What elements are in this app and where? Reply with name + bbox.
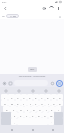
button[interactable]: More options (55, 5, 62, 12)
staticText: t (30, 102, 31, 105)
staticText: . (51, 120, 52, 123)
staticText: u (41, 102, 43, 105)
staticText: 0 (59, 96, 61, 99)
button[interactable]: 6 (33, 94, 39, 100)
button[interactable]: n (42, 112, 48, 118)
staticText: b (38, 114, 40, 117)
staticText: c (26, 114, 28, 117)
button[interactable]: Emoji (49, 80, 55, 86)
staticText: s (13, 108, 15, 111)
staticText: j (46, 108, 47, 111)
button[interactable]: 9 (51, 94, 57, 100)
button[interactable]: u (39, 100, 45, 106)
button[interactable]: d (17, 106, 24, 112)
staticText: z (14, 114, 16, 117)
button[interactable]: 0 (57, 94, 63, 100)
button[interactable]: z (11, 112, 18, 118)
staticText: +1 555 (10, 15, 16, 18)
button[interactable]: w (8, 100, 15, 106)
button[interactable]: h (37, 106, 43, 112)
button[interactable]: Back (9, 127, 14, 132)
button[interactable]: Back (2, 5, 9, 12)
staticText: p (59, 102, 61, 105)
staticText: v (32, 114, 34, 117)
button[interactable]: +1 555 (6, 14, 19, 18)
staticText: Text message · Unencrypted (0, 75, 64, 78)
button[interactable]: q (1, 100, 8, 106)
button[interactable]: b (36, 112, 42, 118)
staticText: m (50, 114, 53, 117)
button[interactable]: Keyboard tool 1 (3, 88, 8, 93)
button[interactable]: r (21, 100, 27, 106)
button[interactable]: o (51, 100, 57, 106)
staticText: d (20, 108, 22, 111)
button[interactable]: 4 (21, 94, 27, 100)
staticText: 1 (4, 96, 6, 99)
button[interactable]: l (55, 106, 61, 112)
staticText: e (17, 102, 19, 105)
button[interactable]: v (30, 112, 36, 118)
button[interactable]: f (24, 106, 31, 112)
button[interactable]: Photos (7, 80, 13, 86)
button[interactable]: Keyboard tool 4 (43, 88, 48, 93)
button[interactable]: 2 (8, 94, 15, 100)
staticText: i (48, 102, 49, 105)
staticText: Text (30, 68, 35, 71)
button[interactable]: 7 (39, 94, 45, 100)
button[interactable]: Add attachment (1, 80, 7, 86)
button[interactable]: y (33, 100, 39, 106)
staticText: w (11, 102, 13, 105)
button[interactable]: e (15, 100, 21, 106)
button[interactable]: a (3, 106, 10, 112)
staticText: 6 (35, 96, 37, 99)
button[interactable]: m (48, 112, 54, 118)
staticText: h (39, 108, 41, 111)
staticText: 2 (11, 96, 13, 99)
staticText: 9 (53, 96, 55, 99)
staticText: 9:41 (2, 1, 7, 4)
button[interactable]: Show contacts (57, 14, 62, 19)
staticText: q (4, 102, 6, 105)
button[interactable]: Call (48, 5, 55, 12)
button[interactable]: 1 (1, 94, 8, 100)
staticText: l (58, 108, 59, 111)
button[interactable]: 5 (27, 94, 33, 100)
button[interactable]: x (18, 112, 24, 118)
button[interactable]: c (24, 112, 30, 118)
button[interactable]: k (49, 106, 55, 112)
button[interactable]: Keyboard tool 3 (30, 88, 35, 93)
button[interactable]: 8 (45, 94, 51, 100)
button[interactable]: Home (30, 127, 35, 132)
staticText: x (20, 114, 22, 117)
button[interactable]: Send (55, 79, 63, 87)
button[interactable]: t (27, 100, 33, 106)
staticText: To: (2, 15, 5, 18)
button[interactable]: i (45, 100, 51, 106)
button[interactable]: Video call (41, 5, 48, 12)
button[interactable]: p (57, 100, 63, 106)
button[interactable]: j (43, 106, 49, 112)
button[interactable]: 3 (15, 94, 21, 100)
staticText: 4 (23, 96, 25, 99)
button[interactable]: s (10, 106, 17, 112)
staticText: r (23, 102, 25, 105)
staticText: n (44, 114, 46, 117)
button[interactable]: Keyboard tool 5 (56, 88, 61, 93)
staticText: 7 (41, 96, 43, 99)
button[interactable]: Recents (50, 127, 55, 132)
staticText: 5 (29, 96, 31, 99)
staticText: 3 (17, 96, 19, 99)
staticText: o (53, 102, 55, 105)
staticText: k (51, 108, 53, 111)
button[interactable]: g (31, 106, 37, 112)
button[interactable]: Keyboard tool 2 (16, 88, 21, 93)
